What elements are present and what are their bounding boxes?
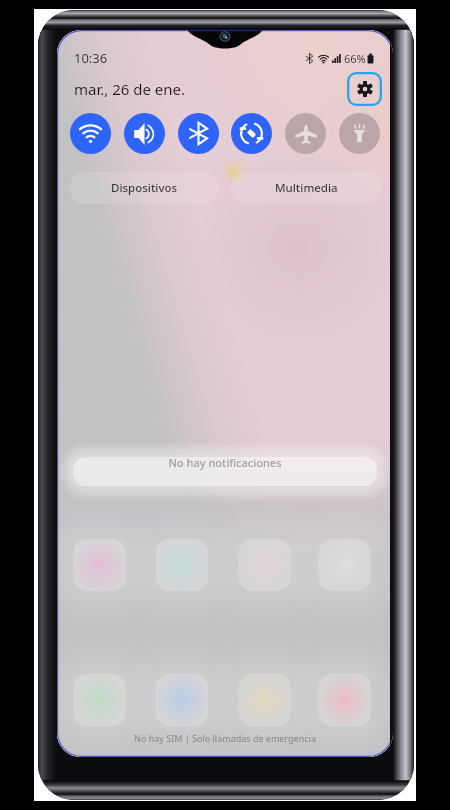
button[interactable]: Dispositivos (69, 172, 219, 204)
button[interactable]: Flashlight (339, 113, 380, 154)
button[interactable]: Bluetooth (178, 113, 219, 154)
staticText: 66% (344, 51, 366, 66)
staticText: 10:36 (74, 49, 108, 67)
staticText: No hay SIM | Solo llamadas de emergencia (57, 732, 393, 744)
button[interactable]: Multimedia (231, 172, 381, 204)
button[interactable]: Auto rotate (231, 113, 272, 154)
button[interactable]: Wi-Fi (70, 113, 111, 154)
staticText: Multimedia (275, 180, 338, 196)
staticText: Dispositivos (111, 180, 178, 196)
button[interactable]: Airplane mode (285, 113, 326, 154)
button[interactable]: Settings (347, 72, 382, 106)
staticText: mar., 26 de ene. (74, 79, 186, 99)
staticText: No hay notificaciones (57, 455, 393, 470)
button[interactable]: Sound (124, 113, 165, 154)
